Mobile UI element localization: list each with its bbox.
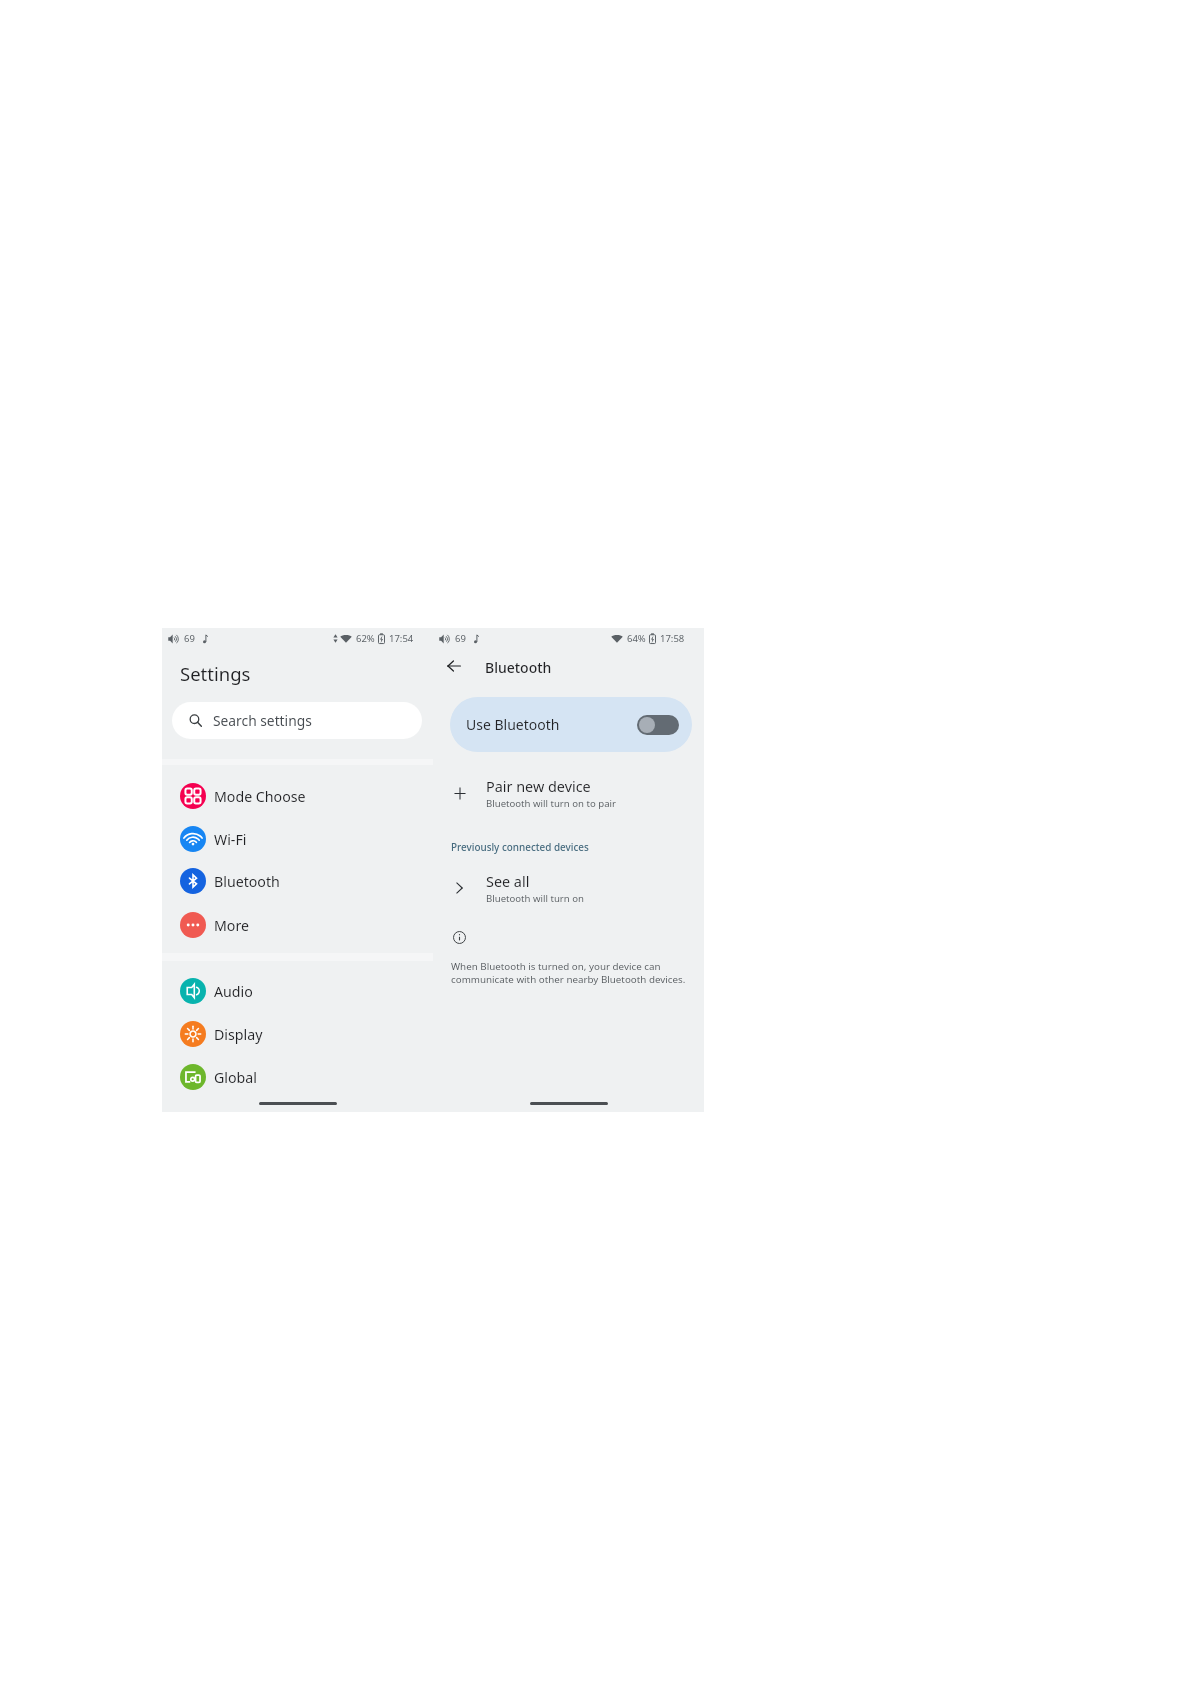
button[interactable]: Search settings bbox=[172, 702, 422, 739]
staticText: Bluetooth will turn on to pair bbox=[486, 797, 616, 810]
button[interactable]: Back bbox=[440, 652, 468, 680]
staticText: 69 bbox=[455, 632, 466, 645]
button[interactable]: Display bbox=[162, 1013, 433, 1055]
staticText: 64% bbox=[627, 632, 646, 645]
staticText: 69 bbox=[184, 632, 195, 645]
staticText: 17:54 bbox=[389, 632, 414, 645]
staticText: Pair new device bbox=[486, 777, 591, 797]
button[interactable]: Use Bluetooth bbox=[450, 697, 692, 752]
button[interactable]: Bluetooth bbox=[162, 860, 433, 902]
staticText: Bluetooth bbox=[214, 872, 280, 891]
button[interactable]: Pair new device bbox=[433, 776, 704, 810]
staticText: 62% bbox=[356, 632, 375, 645]
button[interactable]: More bbox=[162, 904, 433, 946]
staticText: More bbox=[214, 916, 250, 935]
staticText: Settings bbox=[180, 661, 251, 686]
button[interactable]: Audio bbox=[162, 970, 433, 1012]
staticText: Wi-Fi bbox=[214, 830, 247, 849]
button[interactable]: Mode Choose bbox=[162, 775, 433, 817]
staticText: 17:58 bbox=[660, 632, 685, 645]
staticText: Bluetooth bbox=[485, 658, 552, 677]
staticText: Global bbox=[214, 1068, 257, 1087]
staticText: Audio bbox=[214, 982, 253, 1001]
button[interactable]: Global bbox=[162, 1056, 433, 1098]
staticText: Mode Choose bbox=[214, 787, 306, 806]
staticText: Previously connected devices bbox=[451, 840, 589, 853]
staticText: Search settings bbox=[213, 711, 312, 730]
staticText: See all bbox=[486, 872, 530, 892]
staticText: Display bbox=[214, 1025, 263, 1044]
staticText: Use Bluetooth bbox=[466, 715, 560, 734]
button[interactable]: See all bbox=[433, 871, 704, 905]
button[interactable]: Wi-Fi bbox=[162, 818, 433, 860]
staticText: When Bluetooth is turned on, your device… bbox=[451, 960, 686, 986]
button[interactable]: Use Bluetooth toggle bbox=[637, 715, 679, 735]
staticText: Bluetooth will turn on bbox=[486, 892, 584, 905]
